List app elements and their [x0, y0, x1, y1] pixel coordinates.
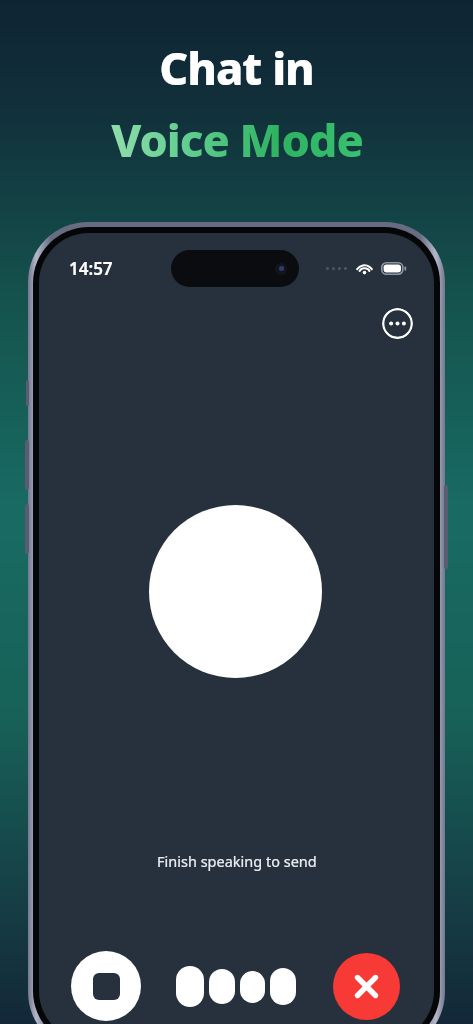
staticText: Finish speaking to send: [157, 851, 317, 871]
staticText: 14:57: [69, 257, 113, 280]
button[interactable]: More options: [382, 308, 413, 339]
button[interactable]: Voice assistant orb: [149, 505, 322, 678]
button[interactable]: Cancel: [333, 953, 400, 1020]
button[interactable]: Audio waveform: [176, 966, 296, 1007]
staticText: Voice Mode: [111, 109, 363, 170]
staticText: Chat in: [159, 37, 314, 98]
button[interactable]: Stop recording: [71, 951, 141, 1021]
